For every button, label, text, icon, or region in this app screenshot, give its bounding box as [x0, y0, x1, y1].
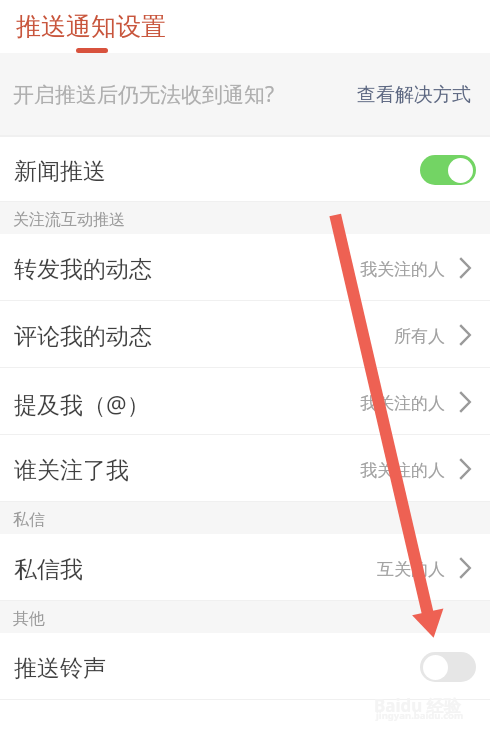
staticText: 评论我的动态	[14, 322, 152, 351]
staticText: 提及我（@）	[14, 388, 150, 419]
button[interactable]: 评论我的动态	[0, 301, 490, 368]
staticText: 所有人	[394, 326, 445, 347]
staticText: 我关注的人	[360, 393, 445, 414]
staticText: Baidu 经验	[374, 694, 461, 717]
staticText: 开启推送后仍无法收到通知?	[13, 80, 275, 109]
staticText: 关注流互动推送	[13, 210, 125, 230]
staticText: 查看解决方式	[357, 83, 471, 107]
button[interactable]: 私信我	[0, 534, 490, 601]
staticText: 互关的人	[377, 559, 445, 580]
staticText: 私信我	[14, 555, 83, 584]
staticText: 我关注的人	[360, 259, 445, 280]
staticText: 其他	[13, 609, 45, 629]
staticText: 我关注的人	[360, 460, 445, 481]
staticText: jingyan.baidu.com	[376, 709, 464, 722]
button[interactable]: 转发我的动态	[0, 234, 490, 301]
button[interactable]: 提及我（@）	[0, 368, 490, 435]
button[interactable]: 新闻推送 已开启	[420, 155, 476, 185]
button[interactable]: 谁关注了我	[0, 435, 490, 502]
staticText: 私信	[13, 510, 45, 530]
button[interactable]: 推送铃声 已关闭	[420, 652, 476, 682]
staticText: 转发我的动态	[14, 255, 152, 284]
staticText: 新闻推送	[14, 157, 106, 186]
button[interactable]: 开启推送后仍无法收到通知?	[0, 53, 490, 135]
staticText: 推送通知设置	[16, 11, 166, 42]
staticText: 推送铃声	[14, 654, 106, 683]
button[interactable]: 推送铃声	[0, 633, 490, 700]
staticText: 谁关注了我	[14, 456, 129, 485]
button[interactable]: 新闻推送	[0, 137, 490, 202]
button[interactable]: 推送通知设置	[0, 0, 185, 53]
